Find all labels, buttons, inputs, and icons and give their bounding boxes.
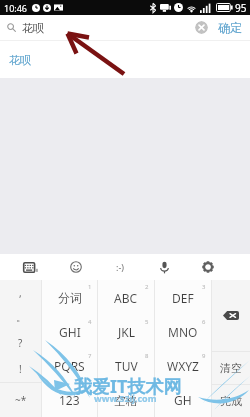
button[interactable]: Keyboard layout xyxy=(8,254,53,280)
button[interactable]: 清空 xyxy=(212,352,250,384)
staticText: 。 xyxy=(16,311,26,324)
staticText: TUV xyxy=(115,358,138,374)
staticText: 5 xyxy=(145,318,149,326)
button[interactable]: 花呗 xyxy=(0,41,250,78)
button[interactable]: ~* xyxy=(0,383,41,417)
staticText: , xyxy=(19,286,22,300)
button[interactable]: Settings xyxy=(186,254,230,280)
staticText: www.52ij.com xyxy=(94,392,157,404)
staticText: 花呗 xyxy=(9,53,31,67)
staticText: ABC xyxy=(114,290,138,306)
staticText: 3 xyxy=(202,283,206,291)
staticText: 8 xyxy=(145,352,149,360)
button[interactable]: Voice input xyxy=(142,254,186,280)
staticText: ! xyxy=(19,362,22,376)
staticText: 7 xyxy=(88,352,92,360)
staticText: 空格 xyxy=(114,393,138,408)
button[interactable]: ? xyxy=(0,330,41,356)
staticText: 花呗 xyxy=(22,21,44,35)
staticText: WXYZ xyxy=(167,358,199,374)
button[interactable]: 分词 xyxy=(42,280,97,315)
staticText: ? xyxy=(18,336,23,350)
staticText: 9 xyxy=(202,352,206,360)
staticText: 我爱IT技术网 xyxy=(74,374,182,399)
staticText: ~* xyxy=(15,393,27,407)
button[interactable]: Clear text xyxy=(195,21,208,34)
button[interactable]: DEF xyxy=(155,280,211,315)
staticText: GH xyxy=(174,392,192,408)
staticText: 10:46 xyxy=(4,2,28,14)
button[interactable]: 确定 xyxy=(217,20,243,35)
button[interactable]: GHI xyxy=(42,315,97,349)
button[interactable]: 。 xyxy=(0,305,41,330)
button[interactable]: , xyxy=(0,280,41,305)
button[interactable]: TUV xyxy=(98,349,154,383)
staticText: 2 xyxy=(145,283,149,291)
button[interactable]: PQRS xyxy=(42,349,97,383)
staticText: 123 xyxy=(59,392,80,408)
button[interactable]: JKL xyxy=(98,315,154,349)
button[interactable]: Emoticons xyxy=(98,254,142,280)
button[interactable]: Backspace xyxy=(212,280,250,351)
staticText: 6 xyxy=(202,318,206,326)
staticText: 4 xyxy=(88,318,92,326)
staticText: 1 xyxy=(88,283,92,291)
button[interactable]: Emoji xyxy=(53,254,98,280)
staticText: :-) xyxy=(116,261,125,273)
button[interactable]: WXYZ xyxy=(155,349,211,383)
staticText: 95 xyxy=(235,1,247,15)
staticText: MNO xyxy=(168,324,198,340)
staticText: 分词 xyxy=(58,290,82,305)
button[interactable]: GH xyxy=(155,383,211,417)
staticText: DEF xyxy=(172,290,194,306)
staticText: 确定 xyxy=(218,20,242,35)
staticText: JKL xyxy=(118,324,135,340)
button[interactable]: ! xyxy=(0,356,41,382)
button[interactable]: MNO xyxy=(155,315,211,349)
staticText: GHI xyxy=(59,324,81,340)
button[interactable]: 完成 xyxy=(212,385,250,417)
staticText: 清空 xyxy=(220,361,242,375)
staticText: PQRS xyxy=(54,358,85,374)
button[interactable]: ABC xyxy=(98,280,154,315)
staticText: 完成 xyxy=(220,394,242,408)
button[interactable]: 空格 xyxy=(98,383,154,417)
button[interactable]: 123 xyxy=(42,383,97,417)
